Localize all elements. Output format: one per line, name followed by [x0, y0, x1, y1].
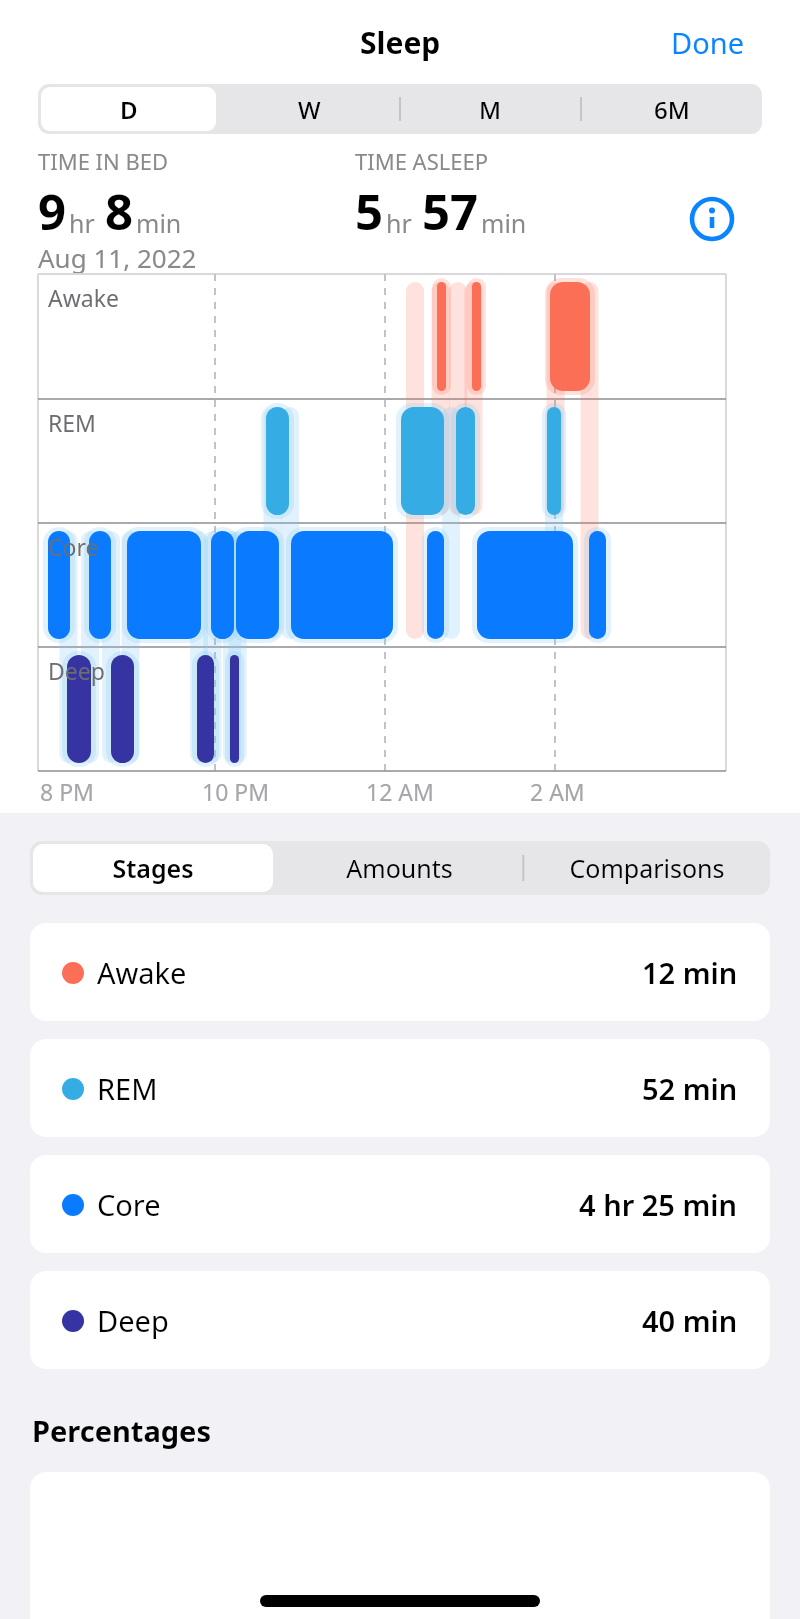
button[interactable]: Amounts — [279, 844, 520, 892]
staticText: 40 min — [642, 1301, 738, 1340]
button[interactable]: Done — [663, 15, 752, 70]
button[interactable]: W — [222, 87, 397, 131]
staticText: Awake — [48, 282, 119, 313]
staticText: 5 — [355, 178, 384, 245]
staticText: 12 min — [642, 953, 738, 992]
staticText: Core — [48, 531, 99, 562]
staticText: 2 AM — [530, 776, 585, 807]
button[interactable]: REM — [30, 1039, 770, 1137]
staticText: 8 PM — [40, 776, 94, 807]
staticText: TIME IN BED — [38, 146, 169, 176]
staticText: D — [120, 93, 138, 126]
staticText: Core — [97, 1185, 161, 1224]
staticText: Amounts — [346, 851, 453, 885]
staticText: Deep — [97, 1301, 169, 1340]
staticText: Deep — [48, 655, 105, 686]
staticText: 6M — [654, 93, 690, 126]
staticText: Sleep — [360, 22, 441, 63]
button[interactable]: Awake — [30, 923, 770, 1021]
staticText: REM — [48, 407, 96, 438]
staticText: Awake — [97, 953, 187, 992]
button[interactable]: Stages — [33, 844, 273, 892]
staticText: M — [479, 93, 502, 126]
staticText: Aug 11, 2022 — [38, 240, 197, 275]
staticText: TIME ASLEEP — [355, 146, 489, 176]
button[interactable]: Deep — [30, 1271, 770, 1369]
button[interactable]: 6M — [584, 87, 759, 131]
button[interactable]: D — [41, 87, 216, 131]
staticText: W — [298, 93, 321, 126]
staticText: hr — [69, 206, 95, 240]
staticText: hr — [386, 206, 412, 240]
staticText: Done — [671, 23, 744, 62]
staticText: 10 PM — [202, 776, 270, 807]
staticText: Percentages — [32, 1411, 211, 1450]
staticText: 57 — [422, 178, 479, 245]
button[interactable]: Core — [30, 1155, 770, 1253]
button[interactable]: Comparisons — [526, 844, 767, 892]
staticText: 12 AM — [366, 776, 434, 807]
button[interactable]: About sleep data — [689, 196, 735, 242]
staticText: 4 hr 25 min — [579, 1185, 738, 1224]
button[interactable]: M — [403, 87, 578, 131]
staticText: min — [136, 206, 182, 240]
staticText: Comparisons — [569, 851, 725, 885]
staticText: Stages — [112, 851, 194, 885]
staticText: 8 — [105, 178, 134, 245]
staticText: 52 min — [642, 1069, 738, 1108]
staticText: min — [481, 206, 527, 240]
staticText: REM — [97, 1069, 158, 1108]
staticText: 9 — [38, 178, 67, 245]
